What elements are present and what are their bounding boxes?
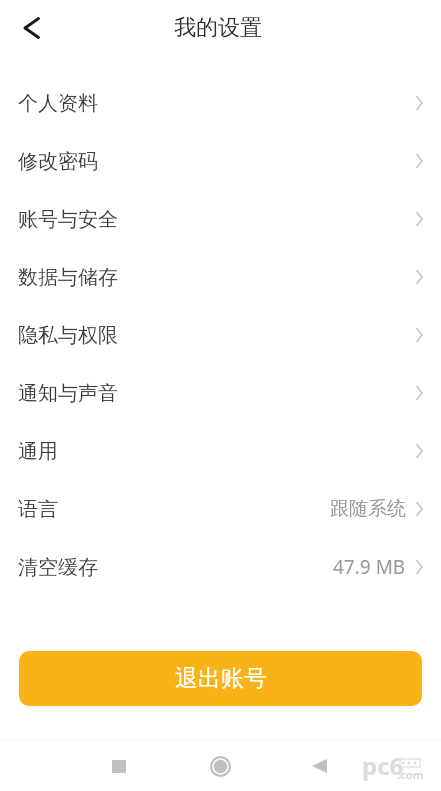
staticText: 隐私与权限: [18, 323, 118, 348]
staticText: 语言: [18, 497, 58, 522]
button[interactable]: 通知与声音: [0, 364, 441, 422]
staticText: pc6: [362, 749, 404, 782]
staticText: 47.9 MB: [333, 554, 406, 580]
staticText: 个人资料: [18, 91, 98, 116]
button[interactable]: 个人资料: [0, 74, 441, 132]
button[interactable]: 账号与安全: [0, 190, 441, 248]
button[interactable]: 语言: [0, 480, 441, 538]
button[interactable]: 修改密码: [0, 132, 441, 190]
staticText: 跟随系统: [330, 497, 406, 521]
staticText: 我的设置: [174, 14, 262, 42]
button[interactable]: 退出账号: [19, 651, 422, 706]
button[interactable]: 数据与储存: [0, 248, 441, 306]
button[interactable]: Back: [301, 748, 337, 784]
button[interactable]: Back: [8, 5, 54, 51]
button[interactable]: 清空缓存: [0, 538, 441, 596]
staticText: 账号与安全: [18, 207, 118, 232]
button[interactable]: Home: [200, 746, 240, 786]
button[interactable]: 隐私与权限: [0, 306, 441, 364]
staticText: 修改密码: [18, 149, 98, 174]
staticText: 通用: [18, 439, 58, 464]
button[interactable]: 通用: [0, 422, 441, 480]
staticText: .com: [397, 767, 424, 782]
staticText: 清空缓存: [18, 555, 98, 580]
staticText: 数据与储存: [18, 265, 118, 290]
staticText: 退出账号: [175, 664, 267, 693]
staticText: 通知与声音: [18, 381, 118, 406]
button[interactable]: Recent apps: [101, 748, 137, 784]
